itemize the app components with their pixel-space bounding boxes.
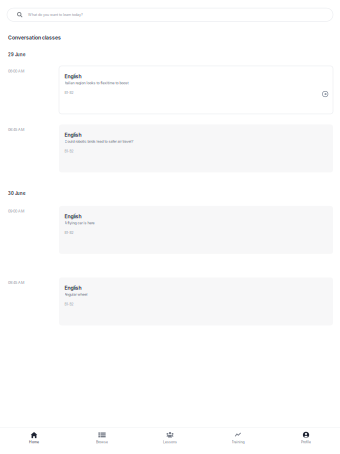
staticText: 09:45 AM [8, 280, 24, 285]
staticText: 06:45 AM [8, 127, 24, 132]
button[interactable]: English [59, 206, 333, 254]
button[interactable]: Home [0, 427, 68, 449]
staticText: English [64, 213, 81, 219]
button[interactable]: English [59, 66, 333, 114]
staticText: What do you want to learn today? [28, 12, 83, 17]
staticText: Italian region looks to flexitime to boo… [64, 81, 128, 85]
button[interactable]: What do you want to learn today? [7, 8, 333, 21]
staticText: English [64, 73, 81, 79]
staticText: B1-B2 [64, 91, 73, 95]
staticText: English [64, 285, 81, 291]
staticText: 29 June [8, 52, 25, 57]
button[interactable]: English [59, 124, 333, 172]
staticText: 06:00 AM [8, 69, 24, 73]
button[interactable]: Profile [272, 427, 340, 449]
button[interactable]: Lessons [136, 427, 204, 449]
staticText: Angular wheel [64, 292, 87, 297]
button[interactable]: Browse [68, 427, 136, 449]
staticText: 09:00 AM [8, 209, 24, 213]
staticText: English [64, 132, 81, 138]
staticText: Training [231, 440, 244, 444]
staticText: Browse [96, 440, 108, 444]
staticText: Profile [301, 440, 311, 444]
button[interactable]: English [59, 277, 333, 325]
staticText: A flying car is here [64, 221, 94, 225]
staticText: B1-B2 [64, 149, 73, 153]
staticText: B1-B2 [64, 231, 73, 235]
staticText: 30 June [8, 191, 25, 196]
button[interactable]: Training [204, 427, 272, 449]
staticText: Conversation classes [8, 35, 61, 41]
staticText: B1-B2 [64, 302, 73, 306]
staticText: Home [29, 440, 39, 444]
staticText: Lessons [163, 440, 177, 444]
staticText: Could robotic birds lead to safer air tr… [64, 139, 133, 144]
